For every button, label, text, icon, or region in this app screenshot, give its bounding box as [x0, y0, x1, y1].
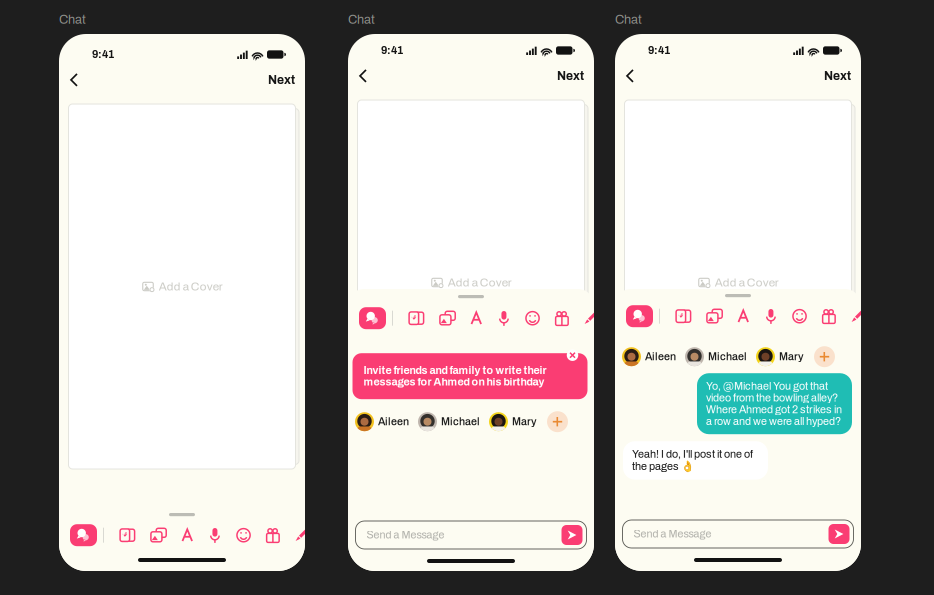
staticText: Add a Cover	[715, 276, 779, 289]
button[interactable]: Michael	[409, 412, 480, 431]
button[interactable]: Page 1	[68, 510, 91, 537]
button[interactable]: Cards	[119, 528, 135, 542]
staticText: Michael	[708, 351, 747, 362]
button[interactable]: Draw	[295, 528, 309, 542]
button[interactable]: Text	[471, 311, 483, 325]
button[interactable]: Back	[355, 64, 371, 88]
button[interactable]: Text	[738, 309, 750, 323]
button[interactable]: Gift	[555, 311, 569, 326]
button[interactable]: Messages	[626, 305, 653, 327]
button[interactable]: Voice	[208, 528, 221, 543]
staticText: Chat	[59, 13, 86, 26]
staticText: Next	[824, 69, 851, 83]
button[interactable]: Emoji	[792, 309, 807, 323]
button[interactable]: Cards	[675, 309, 691, 323]
button[interactable]: Dismiss	[563, 346, 581, 364]
staticText: Invite friends and family to write their…	[363, 365, 546, 388]
staticText: Chat	[615, 13, 642, 26]
button[interactable]: Page 2	[93, 510, 116, 537]
button[interactable]: Add page	[193, 510, 219, 537]
button[interactable]: Back	[66, 68, 82, 92]
button[interactable]: Voice	[764, 309, 777, 324]
button[interactable]: Next	[821, 65, 854, 87]
staticText: Yeah! I do, I'll post it one of the page…	[632, 448, 753, 473]
staticText: Aileen	[645, 351, 676, 362]
button[interactable]: Cards	[408, 311, 424, 325]
staticText: Next	[268, 73, 295, 87]
button[interactable]: Draw	[851, 309, 865, 323]
button[interactable]: Photos	[150, 528, 167, 543]
staticText: Send a Message	[633, 528, 711, 540]
button[interactable]: Page 3	[118, 510, 141, 537]
button[interactable]: Add person	[804, 346, 835, 367]
button[interactable]: Voice	[497, 311, 510, 326]
staticText: Mary	[779, 351, 804, 362]
staticText: Chat	[348, 13, 375, 26]
button[interactable]: Photos	[439, 311, 456, 326]
staticText: 9:41	[381, 45, 403, 56]
staticText: Send a Message	[366, 529, 444, 541]
staticText: Next	[557, 69, 584, 83]
staticText: Add a Cover	[159, 280, 223, 293]
button[interactable]: Emoji	[525, 311, 540, 325]
button[interactable]: Mary	[480, 412, 537, 431]
button[interactable]: Messages	[359, 307, 386, 329]
staticText: Michael	[441, 416, 480, 427]
button[interactable]: Back	[622, 64, 638, 88]
button[interactable]: Mary	[747, 347, 804, 366]
staticText: Aileen	[378, 416, 409, 427]
staticText: 9:41	[648, 45, 670, 56]
button[interactable]: Page 5	[168, 510, 191, 537]
button[interactable]: Draw	[584, 311, 598, 325]
button[interactable]: Page 4	[143, 510, 166, 537]
button[interactable]: Next	[554, 65, 587, 87]
button[interactable]: Send	[828, 524, 849, 544]
button[interactable]: Next	[265, 69, 298, 91]
button[interactable]: Gift	[822, 309, 836, 324]
button[interactable]: Michael	[676, 347, 747, 366]
button[interactable]: Add person	[537, 411, 568, 432]
button[interactable]: Aileen	[622, 347, 676, 366]
button[interactable]: Messages	[70, 524, 97, 546]
staticText: Yo, @Michael You got that video from the…	[706, 380, 842, 427]
button[interactable]: Aileen	[355, 412, 409, 431]
button[interactable]: Send	[561, 525, 582, 545]
button[interactable]: Emoji	[236, 528, 251, 542]
staticText: 9:41	[92, 49, 114, 60]
button[interactable]: Text	[182, 528, 194, 542]
button[interactable]: Photos	[706, 309, 723, 324]
staticText: Mary	[512, 416, 537, 427]
button[interactable]: Gift	[266, 528, 280, 543]
staticText: Add a Cover	[448, 276, 512, 289]
